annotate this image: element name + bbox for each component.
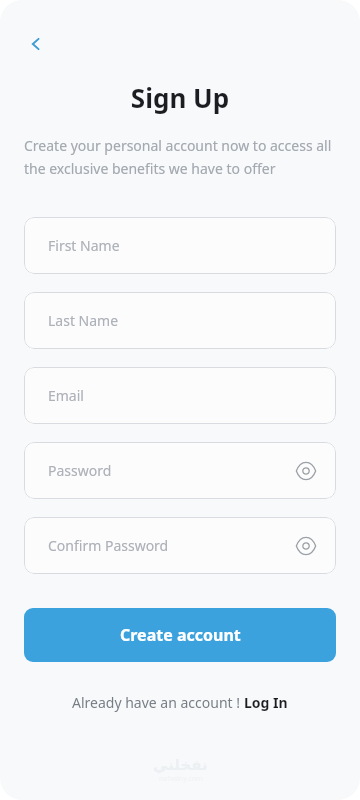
button[interactable]: Show password [292, 532, 320, 560]
staticText: Log In [244, 693, 288, 712]
button[interactable]: Show password [292, 457, 320, 485]
staticText: Confirm Password [48, 536, 169, 555]
staticText: Sign Up [0, 80, 360, 115]
button[interactable]: Back [18, 26, 54, 62]
staticText: Create your personal account now to acce… [24, 136, 332, 178]
staticText: Last Name [48, 311, 119, 330]
staticText: Already have an account ! [72, 693, 244, 712]
button[interactable]: Email [24, 367, 336, 424]
staticText: First Name [48, 236, 120, 255]
button[interactable]: Confirm Password [24, 517, 336, 574]
staticText: Email [48, 386, 84, 405]
staticText: نفخلني [153, 756, 208, 773]
button[interactable]: First Name [24, 217, 336, 274]
button[interactable]: Password [24, 442, 336, 499]
button[interactable]: Log In [244, 693, 288, 712]
staticText: Password [48, 461, 112, 480]
button[interactable]: Create account [24, 608, 336, 662]
button[interactable]: Last Name [24, 292, 336, 349]
staticText: Create account [120, 624, 241, 646]
